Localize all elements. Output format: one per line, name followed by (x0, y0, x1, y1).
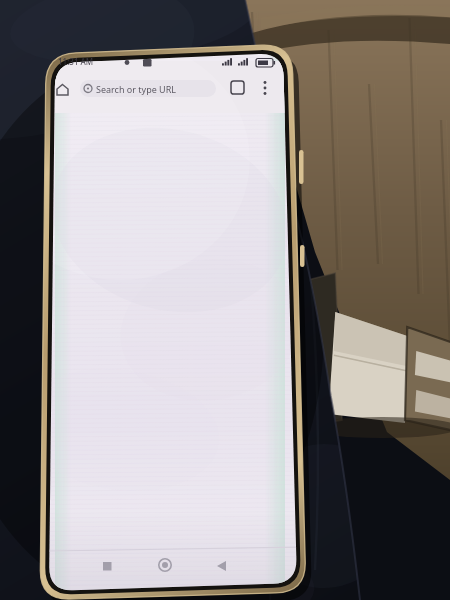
button[interactable]: Home page (52, 78, 74, 100)
button[interactable]: Back (210, 554, 234, 578)
button[interactable]: More options (256, 77, 276, 97)
staticText: 11:31 AM (58, 56, 94, 67)
button[interactable]: Home (153, 553, 177, 577)
staticText: Search or type URL (96, 83, 177, 95)
button[interactable]: Tab switcher (227, 77, 249, 99)
button[interactable]: Recent apps (96, 554, 120, 578)
button[interactable]: Search or type URL (80, 80, 216, 97)
